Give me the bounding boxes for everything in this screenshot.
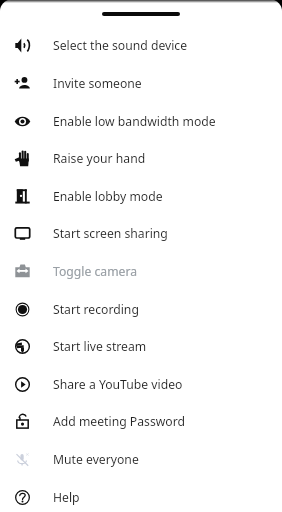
button[interactable]: Raise your hand xyxy=(0,139,282,177)
staticText: Start recording xyxy=(53,301,139,318)
staticText: Invite someone xyxy=(53,75,142,92)
staticText: Add meeting Password xyxy=(53,413,185,430)
staticText: Toggle camera xyxy=(53,263,138,280)
button[interactable]: Add meeting Password xyxy=(0,402,282,440)
button[interactable]: Invite someone xyxy=(0,64,282,102)
button[interactable]: Start screen sharing xyxy=(0,214,282,252)
staticText: Start screen sharing xyxy=(53,225,168,242)
button[interactable]: Select the sound device xyxy=(0,26,282,64)
button[interactable]: Enable lobby mode xyxy=(0,177,282,215)
staticText: Help xyxy=(53,489,80,506)
staticText: Start live stream xyxy=(53,338,147,355)
staticText: Raise your hand xyxy=(53,150,146,167)
button[interactable]: Toggle camera xyxy=(0,252,282,290)
staticText: Select the sound device xyxy=(53,37,188,54)
button[interactable]: Start live stream xyxy=(0,327,282,365)
staticText: Share a YouTube video xyxy=(53,376,183,393)
other: Drag handle xyxy=(102,12,180,16)
button[interactable]: Start recording xyxy=(0,290,282,328)
staticText: Enable lobby mode xyxy=(53,188,163,205)
button[interactable]: Help xyxy=(0,478,282,512)
button[interactable]: Enable low bandwidth mode xyxy=(0,102,282,140)
staticText: Enable low bandwidth mode xyxy=(53,113,216,130)
button[interactable]: Mute everyone xyxy=(0,440,282,478)
staticText: Mute everyone xyxy=(53,451,139,468)
button[interactable]: Share a YouTube video xyxy=(0,365,282,403)
